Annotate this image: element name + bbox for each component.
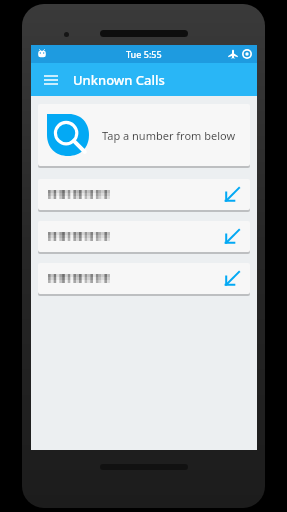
staticText: Tap a number from below <box>102 128 236 143</box>
staticText: Unknown Calls <box>73 71 165 89</box>
button[interactable]: Incoming call <box>38 263 250 294</box>
button[interactable]: Open navigation menu <box>38 67 64 93</box>
button[interactable]: Incoming call <box>38 179 250 210</box>
button[interactable]: Incoming call <box>38 221 250 252</box>
other: Incoming call <box>225 187 240 202</box>
other: Incoming call <box>225 229 240 244</box>
button[interactable]: Tap a number from below <box>38 104 250 166</box>
other: Incoming call <box>225 271 240 286</box>
staticText: Tue 5:55 <box>126 48 162 60</box>
